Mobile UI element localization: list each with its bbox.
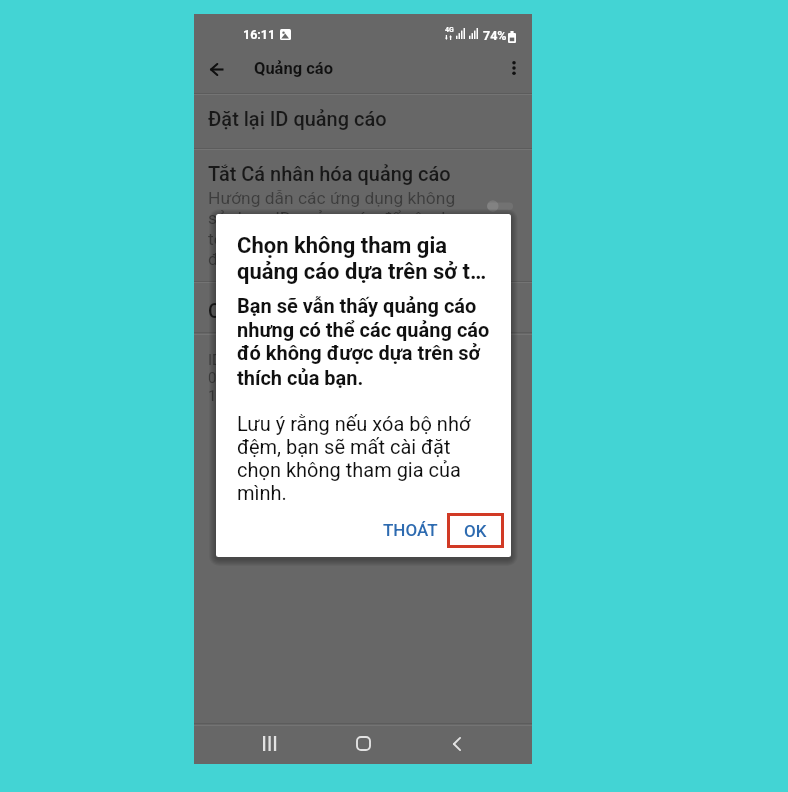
button[interactable]: Home bbox=[340, 724, 386, 763]
staticText: OK bbox=[464, 521, 487, 541]
staticText: 0a1b2c3d-4e5f-6789-abcd-ef0123456789 bbox=[208, 369, 486, 387]
staticText: sử dụng ID quảng cáo để xây dựng bbox=[208, 208, 476, 228]
button[interactable]: OK bbox=[447, 513, 504, 548]
staticText: chọn không tham gia của bbox=[237, 458, 461, 481]
staticText: mình. bbox=[237, 481, 287, 504]
staticText: Hướng dẫn các ứng dụng không bbox=[208, 188, 456, 208]
staticText: nhưng có thể các quảng cáo bbox=[237, 318, 490, 341]
button[interactable]: More options bbox=[494, 48, 534, 88]
button[interactable]: THOÁT bbox=[378, 513, 442, 547]
staticText: Bạn sẽ vẫn thấy quảng cáo bbox=[237, 294, 477, 317]
staticText: 4G bbox=[445, 26, 454, 34]
staticText: thích của bạn. bbox=[237, 366, 364, 389]
staticText: Cài đặt nâng cao bbox=[208, 299, 359, 322]
button[interactable]: Recent apps bbox=[246, 724, 292, 763]
staticText: đề xuất quảng cáo được cá nhân bbox=[208, 249, 461, 269]
button[interactable]: Back bbox=[434, 724, 480, 763]
staticText: Quảng cáo bbox=[254, 59, 333, 78]
staticText: đó không được dựa trên sở bbox=[237, 341, 481, 364]
staticText: 16:11 bbox=[243, 27, 276, 42]
staticText: THOÁT bbox=[383, 520, 438, 540]
staticText: ID quảng cáo bbox=[208, 351, 296, 369]
button[interactable] bbox=[194, 95, 532, 150]
staticText: 1234567890 bbox=[208, 387, 293, 405]
staticText: tệp thông tin hoặc hiển thị quảng bbox=[208, 229, 462, 249]
staticText: Lưu ý rằng nếu xóa bộ nhớ bbox=[237, 412, 471, 435]
button[interactable] bbox=[194, 150, 532, 282]
staticText: đệm, bạn sẽ mất cài đặt bbox=[237, 435, 451, 458]
button[interactable] bbox=[194, 283, 532, 333]
staticText: quảng cáo dựa trên sở t… bbox=[237, 259, 487, 285]
staticText: 74% bbox=[483, 28, 507, 43]
staticText: Chọn không tham gia bbox=[237, 233, 448, 259]
button[interactable]: Back bbox=[195, 49, 239, 89]
staticText: Tắt Cá nhân hóa quảng cáo bbox=[208, 162, 451, 185]
staticText: Đặt lại ID quảng cáo bbox=[208, 107, 387, 130]
